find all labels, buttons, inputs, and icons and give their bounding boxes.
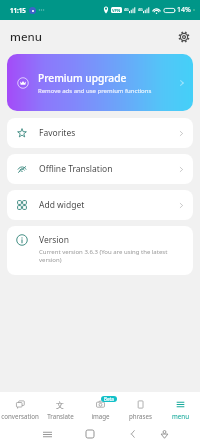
button[interactable]: Favorites [7,118,193,148]
button[interactable]: Home [81,425,99,443]
staticText: menu [172,412,189,420]
staticText: menu [10,29,42,45]
staticText: 4G [124,7,129,12]
staticText: 文A [56,400,65,409]
staticText: Offline Translation [39,163,113,175]
button[interactable]: Version [7,226,193,275]
button[interactable]: conversation [0,392,40,421]
staticText: conversation [1,412,39,420]
staticText: Remove ads and use premium functions [38,87,152,95]
staticText: Version [39,234,69,246]
staticText: Beta [104,396,114,402]
button[interactable]: Beta [80,392,120,421]
button[interactable]: Add widget [7,190,193,220]
staticText: Add widget [39,199,85,211]
staticText: Translate [47,412,74,420]
button[interactable]: Back [124,425,142,443]
button[interactable]: Recents [38,425,56,443]
button[interactable]: Premium upgrade [7,54,193,111]
button[interactable]: phrases [120,392,160,421]
staticText: Premium upgrade [38,71,127,85]
button[interactable]: Offline Translation [7,154,193,184]
staticText: VPN [112,8,121,13]
button[interactable]: menu [160,392,200,421]
staticText: phrases [129,412,152,420]
staticText: Favorites [39,127,76,139]
staticText: 4G [138,7,143,12]
button[interactable]: Screenshot [155,425,173,443]
button[interactable]: Settings [175,28,193,46]
staticText: Current version 3.6.3 (You are using the… [39,248,177,264]
button[interactable]: 文A [40,392,80,421]
staticText: image [91,412,110,420]
staticText: 11:15 [10,6,26,14]
staticText: 14% [177,5,191,15]
